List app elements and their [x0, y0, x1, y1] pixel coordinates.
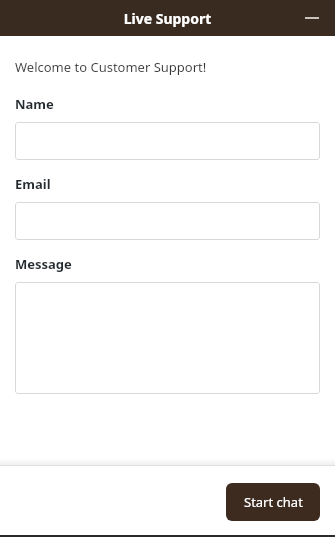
staticText: Start chat	[244, 493, 303, 511]
button[interactable]: Name input field	[15, 122, 320, 160]
staticText: Name	[15, 95, 54, 113]
button[interactable]: Email input field	[15, 202, 320, 240]
button[interactable]: Minimize	[301, 7, 323, 29]
staticText: Welcome to Customer Support!	[15, 58, 207, 76]
staticText: Live Support	[0, 9, 335, 28]
staticText: Email	[15, 175, 51, 193]
button[interactable]: Message input field	[15, 282, 320, 394]
staticText: Message	[15, 255, 72, 273]
button[interactable]: Start chat	[226, 483, 320, 521]
